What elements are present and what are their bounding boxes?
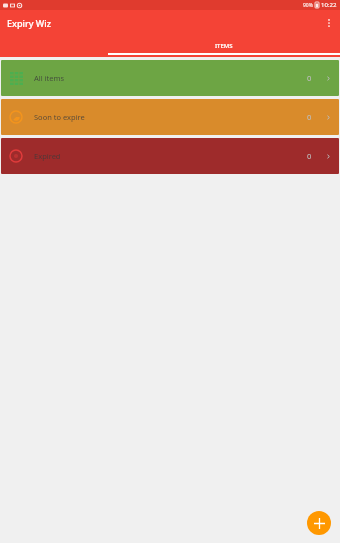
button[interactable]: All items xyxy=(1,60,339,96)
staticText: 0 xyxy=(307,151,312,161)
button[interactable]: More options xyxy=(318,12,340,34)
button[interactable]: Expired xyxy=(1,138,339,174)
staticText: ITEMS xyxy=(215,42,233,50)
staticText: 10:22 xyxy=(321,1,337,9)
staticText: Expiry Wiz xyxy=(7,17,52,29)
staticText: All items xyxy=(34,73,65,83)
button[interactable]: Soon to expire xyxy=(1,99,339,135)
button[interactable]: ITEMS xyxy=(108,36,340,57)
button[interactable]: Add item xyxy=(307,511,331,535)
staticText: 0 xyxy=(307,112,312,122)
staticText: 90% xyxy=(303,2,313,9)
staticText: Soon to expire xyxy=(34,112,85,122)
staticText: 0 xyxy=(307,73,312,83)
staticText: Expired xyxy=(34,151,61,161)
